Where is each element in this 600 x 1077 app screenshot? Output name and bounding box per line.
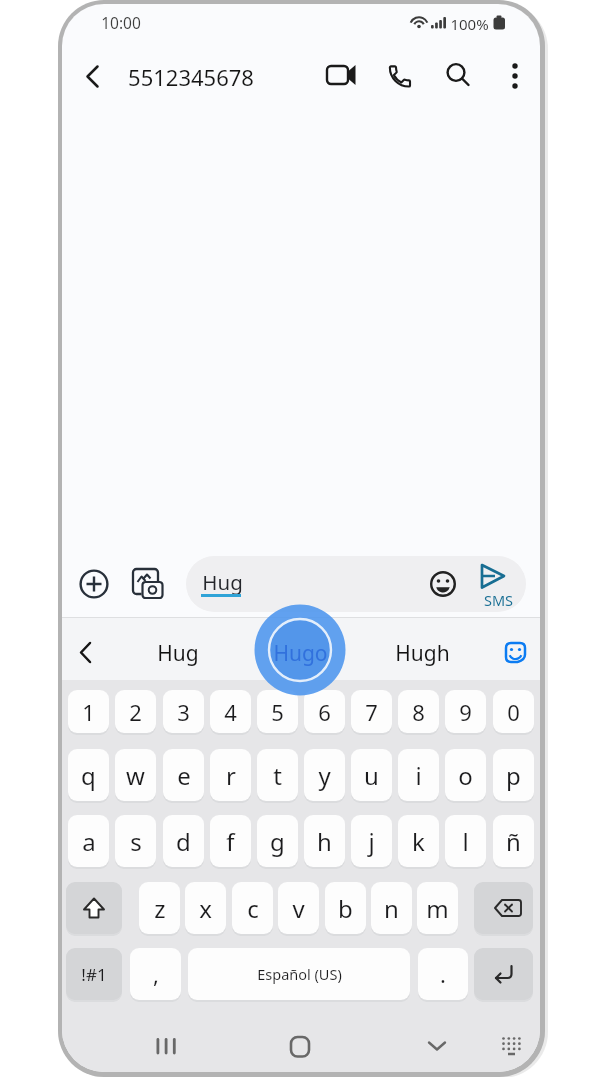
button[interactable]: h [304, 815, 345, 867]
button[interactable]: c [232, 882, 273, 934]
staticText: w [126, 759, 145, 792]
staticText: Hugo [273, 639, 328, 668]
button[interactable]: Español (US) [188, 948, 410, 1000]
staticText: r [226, 759, 236, 792]
button[interactable]: o [445, 749, 486, 801]
button[interactable]: y [304, 749, 345, 801]
button[interactable]: x [185, 882, 226, 934]
staticText: t [273, 759, 282, 792]
button[interactable]: ñ [493, 815, 534, 867]
staticText: p [506, 759, 521, 792]
button[interactable] [72, 562, 116, 606]
button[interactable] [276, 1026, 324, 1066]
button[interactable]: Hug [138, 637, 218, 669]
button[interactable]: g [257, 815, 298, 867]
staticText: x [199, 892, 212, 925]
button[interactable]: 4 [210, 690, 251, 733]
button[interactable]: u [351, 749, 392, 801]
staticText: 100% [450, 14, 489, 31]
button[interactable] [314, 52, 362, 100]
button[interactable]: k [398, 815, 439, 867]
button[interactable] [493, 52, 537, 100]
button[interactable]: 3 [163, 690, 204, 733]
staticText: !#1 [81, 963, 107, 986]
staticText: 9 [459, 697, 472, 727]
button[interactable]: b [325, 882, 366, 934]
staticText: SMS [484, 590, 514, 608]
button[interactable]: q [68, 749, 109, 801]
button[interactable]: 0 [493, 690, 534, 733]
button[interactable]: v [278, 882, 319, 934]
button[interactable]: r [210, 749, 251, 801]
button[interactable]: . [418, 948, 468, 1000]
staticText: n [384, 892, 399, 925]
staticText: e [177, 759, 191, 792]
staticText: ñ [506, 825, 521, 858]
button[interactable]: s [115, 815, 156, 867]
staticText: s [130, 825, 142, 858]
button[interactable] [70, 633, 106, 673]
button[interactable]: e [163, 749, 204, 801]
staticText: v [292, 892, 305, 925]
button[interactable]: z [139, 882, 180, 934]
button[interactable] [70, 52, 114, 100]
button[interactable] [124, 560, 170, 608]
button[interactable] [66, 882, 122, 934]
button[interactable] [474, 948, 533, 1000]
staticText: u [364, 759, 379, 792]
button[interactable]: 1 [68, 690, 109, 733]
button[interactable]: 7 [351, 690, 392, 733]
button[interactable]: p [493, 749, 534, 801]
staticText: 6 [318, 697, 331, 727]
staticText: 8 [412, 697, 425, 727]
staticText: 2 [129, 697, 142, 727]
staticText: Hugh [395, 639, 450, 668]
button[interactable]: l [445, 815, 486, 867]
staticText: q [81, 759, 96, 792]
button[interactable]: 6 [304, 690, 345, 733]
button[interactable]: i [398, 749, 439, 801]
button[interactable]: !#1 [66, 948, 122, 1000]
staticText: i [415, 759, 422, 792]
staticText: 1 [82, 697, 95, 727]
button[interactable]: 2 [115, 690, 156, 733]
button[interactable] [413, 1026, 461, 1066]
button[interactable]: 5 [257, 690, 298, 733]
button[interactable]: m [417, 882, 458, 934]
button[interactable] [434, 52, 482, 100]
staticText: 7 [365, 697, 378, 727]
button[interactable]: w [115, 749, 156, 801]
button[interactable] [421, 562, 465, 606]
staticText: b [338, 892, 353, 925]
button[interactable]: a [68, 815, 109, 867]
staticText: 3 [177, 697, 190, 727]
staticText: , [153, 959, 159, 989]
staticText: 10:00 [101, 12, 141, 32]
staticText: h [317, 825, 332, 858]
staticText: 5 [271, 697, 284, 727]
button[interactable] [376, 52, 424, 100]
staticText: m [426, 892, 449, 925]
staticText: j [368, 825, 375, 858]
button[interactable]: d [163, 815, 204, 867]
staticText: a [82, 825, 96, 858]
button[interactable]: 8 [398, 690, 439, 733]
button[interactable]: t [257, 749, 298, 801]
button[interactable]: , [130, 948, 181, 1000]
button[interactable]: Hugo [260, 637, 340, 669]
button[interactable] [490, 1026, 535, 1066]
button[interactable]: n [371, 882, 412, 934]
button[interactable]: f [210, 815, 251, 867]
button[interactable] [186, 556, 526, 612]
button[interactable]: 9 [445, 690, 486, 733]
staticText: l [462, 825, 469, 858]
button[interactable] [142, 1026, 190, 1066]
button[interactable] [474, 882, 533, 934]
staticText: . [440, 959, 446, 989]
button[interactable]: j [351, 815, 392, 867]
staticText: c [247, 892, 259, 925]
button[interactable]: Hugh [382, 637, 462, 669]
staticText: g [270, 825, 285, 858]
button[interactable]: SMS [472, 556, 526, 612]
button[interactable] [496, 633, 534, 673]
